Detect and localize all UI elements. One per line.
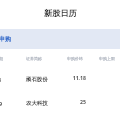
button[interactable]: 09-28 顽石股份 11.18 xyxy=(0,68,120,92)
staticText: 25 xyxy=(56,98,86,105)
staticText: 农大科技 xyxy=(26,100,48,107)
staticText: 申购日期 xyxy=(0,56,3,61)
staticText: 11.18 xyxy=(56,74,86,81)
staticText: 09-29 xyxy=(0,100,3,107)
button[interactable]: 09-29 农大科技 25 xyxy=(0,92,120,116)
staticText: 新股日历 xyxy=(44,8,77,18)
staticText: 09-28 xyxy=(0,76,2,83)
button[interactable]: 申购 xyxy=(0,29,120,49)
staticText: 申购价格 xyxy=(67,56,83,61)
staticText: 申购上限 xyxy=(99,56,115,61)
staticText: 证券简称 xyxy=(26,56,42,61)
staticText: 申购 xyxy=(0,35,11,43)
staticText: 顽石股份 xyxy=(26,76,48,83)
